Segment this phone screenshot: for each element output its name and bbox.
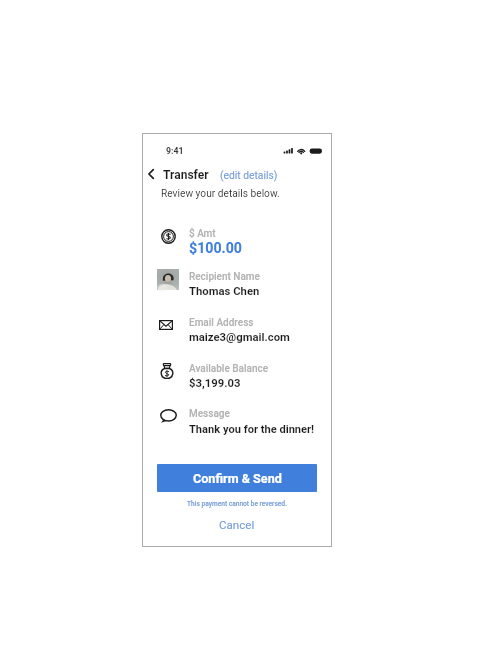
staticText: Transfer — [163, 168, 209, 182]
staticText: maize3@gmail.com — [189, 331, 290, 344]
staticText: $ Amt — [189, 228, 216, 240]
staticText: 9:41 — [166, 146, 184, 156]
button[interactable]: Back — [144, 166, 157, 182]
staticText: Confirm & Send — [193, 471, 282, 486]
staticText: This payment cannot be reversed. — [142, 500, 332, 508]
button[interactable]: (edit details) — [220, 169, 278, 181]
button[interactable]: $ Amt — [142, 219, 332, 253]
staticText: Review your details below. — [161, 188, 280, 200]
staticText: Email Address — [189, 317, 254, 329]
staticText: $100.00 — [189, 240, 242, 257]
button[interactable]: Message — [142, 399, 332, 433]
staticText: Thank you for the dinner! — [189, 423, 315, 436]
staticText: Message — [189, 408, 230, 420]
staticText: Thomas Chen — [189, 285, 260, 298]
staticText: Available Balance — [189, 363, 269, 375]
staticText: (edit details) — [220, 169, 278, 181]
button[interactable]: Cancel — [142, 515, 332, 535]
staticText: Recipient Name — [189, 271, 260, 283]
staticText: Cancel — [219, 518, 255, 532]
button[interactable]: Available Balance — [142, 354, 332, 388]
button[interactable]: Confirm & Send — [157, 464, 317, 492]
button[interactable]: Recipient Name — [142, 262, 332, 296]
staticText: $3,199.03 — [189, 377, 241, 390]
button[interactable]: Email Address — [142, 308, 332, 342]
